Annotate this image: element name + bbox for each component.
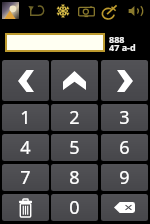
button[interactable]: Camera [75,0,97,22]
button[interactable]: 9 [101,164,148,191]
staticText: 3 [119,105,130,130]
button[interactable]: Scan [99,0,121,22]
button[interactable]: 1 [2,104,49,131]
button[interactable]: 6 [101,134,148,161]
staticText: 2 [69,105,80,130]
button[interactable]: 3 [101,104,148,131]
button[interactable]: 5 [51,134,98,161]
button[interactable]: Up [51,60,98,101]
button[interactable]: 2 [51,104,98,131]
staticText: 8 [69,165,80,190]
staticText: 888 [109,33,125,45]
staticText: 5 [69,135,80,160]
button[interactable]: Clear [2,194,49,221]
button[interactable]: Preview image [2,2,19,19]
button[interactable]: 7 [2,164,49,191]
button[interactable]: Undo [25,0,47,22]
staticText: 4 [20,135,31,160]
button[interactable]: 0 [51,194,98,221]
staticText: 1 [20,105,31,130]
button[interactable]: 4 [2,134,49,161]
button[interactable]: Next [101,60,148,101]
button[interactable]: Volume [125,0,147,22]
button[interactable]: Backspace [101,194,148,221]
button[interactable]: Freeze [52,0,74,22]
staticText: 0 [69,195,80,220]
staticText: 9 [119,165,130,190]
staticText: 6 [119,135,130,160]
button[interactable]: Previous [2,60,49,101]
button[interactable]: 8 [51,164,98,191]
button[interactable] [5,33,105,52]
staticText: 7 [20,165,31,190]
staticText: 47 a-d [109,41,136,53]
